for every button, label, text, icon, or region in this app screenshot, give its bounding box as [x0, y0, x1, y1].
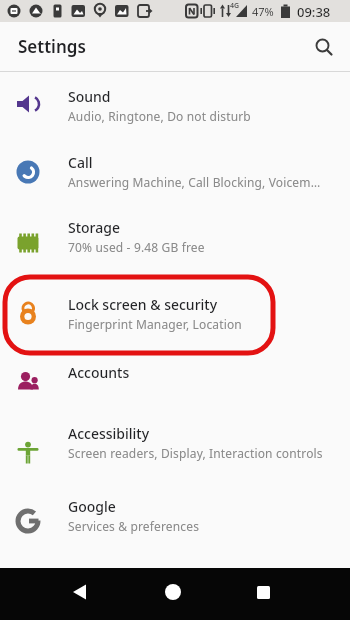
button[interactable]: Lock screen & security: [0, 272, 350, 349]
staticText: Accounts: [68, 363, 130, 382]
staticText: Settings: [18, 35, 86, 58]
button[interactable]: Call: [0, 138, 350, 205]
staticText: Audio, Ringtone, Do not disturb: [68, 108, 251, 124]
button[interactable]: [247, 576, 279, 608]
staticText: Fingerprint Manager, Location: [68, 316, 242, 332]
button[interactable]: Storage: [0, 205, 350, 272]
staticText: Call: [68, 153, 93, 172]
staticText: Answering Machine, Call Blocking, Voicem…: [68, 174, 321, 190]
button[interactable]: [64, 576, 96, 608]
button[interactable]: Accounts: [0, 349, 350, 401]
staticText: Sound: [68, 87, 111, 106]
staticText: 09:38: [297, 3, 331, 21]
staticText: 4G: [230, 1, 240, 11]
staticText: Screen readers, Display, Interaction con…: [68, 445, 323, 461]
button[interactable]: Google: [0, 482, 350, 548]
button[interactable]: Accessibility: [0, 401, 350, 482]
button[interactable]: [306, 29, 342, 65]
staticText: Services & preferences: [68, 518, 200, 534]
staticText: Accessibility: [68, 424, 150, 443]
staticText: Storage: [68, 218, 120, 237]
staticText: 70% used - 9.48 GB free: [68, 239, 205, 255]
button[interactable]: [157, 576, 189, 608]
button[interactable]: Sound: [0, 72, 350, 138]
staticText: 47%: [252, 4, 274, 19]
staticText: Google: [68, 497, 116, 516]
staticText: Lock screen & security: [68, 295, 218, 314]
